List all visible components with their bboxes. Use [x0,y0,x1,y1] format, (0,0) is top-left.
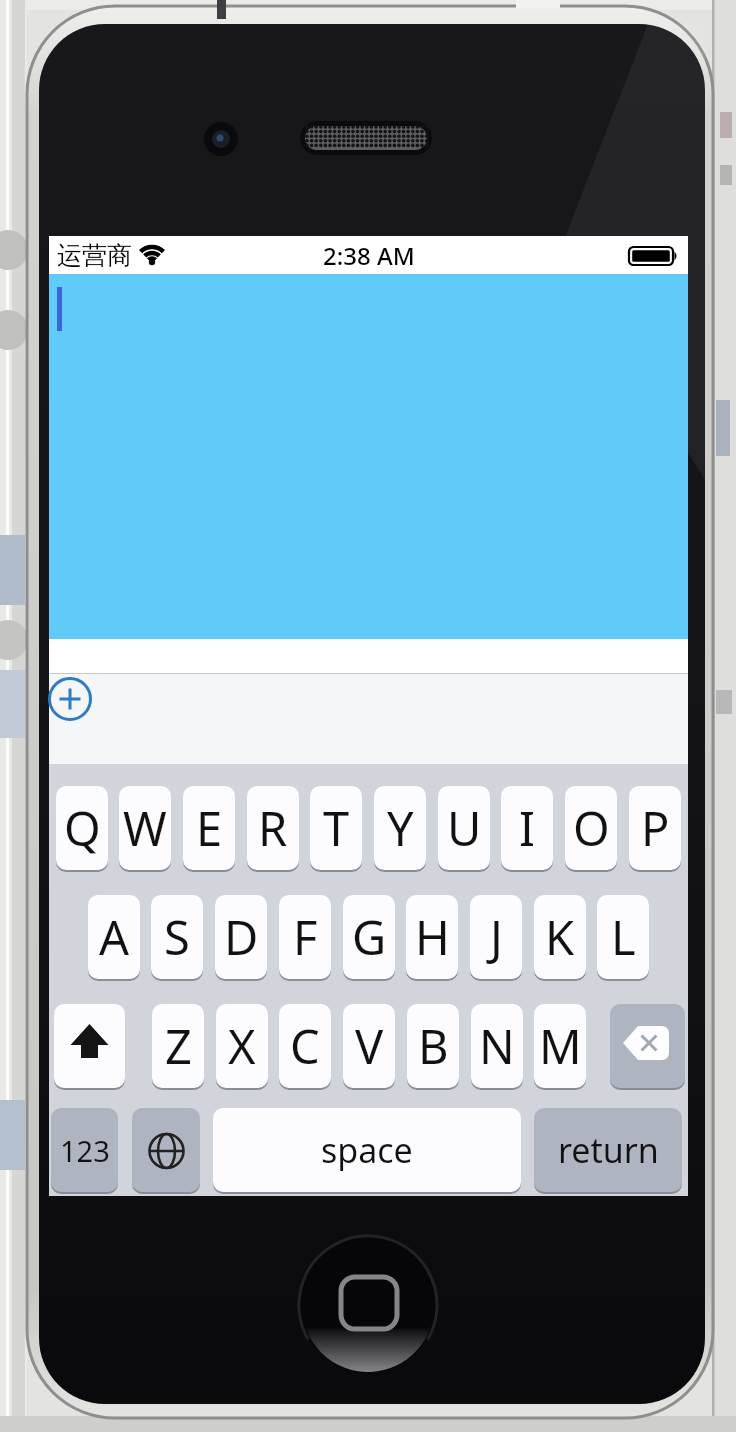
staticText: R [258,796,288,860]
button[interactable]: 123 [51,1108,118,1192]
staticText: S [164,905,190,969]
button[interactable]: E [183,786,235,870]
button[interactable]: J [470,895,522,979]
staticText: A [99,905,130,969]
button[interactable]: C [279,1004,331,1088]
button[interactable]: F [279,895,331,979]
staticText: return [558,1127,659,1173]
staticText: G [352,905,387,969]
staticText: L [611,905,636,969]
staticText: J [490,905,503,969]
staticText: W [123,796,167,860]
button[interactable]: A [88,895,140,979]
staticText: I [519,796,535,860]
staticText: Q [64,796,101,860]
button[interactable]: D [215,895,267,979]
staticText: 2:38 AM [323,239,415,272]
staticText: U [447,796,482,860]
button[interactable]: K [534,895,586,979]
button[interactable]: P [629,786,681,870]
button[interactable] [54,1004,125,1088]
button[interactable]: T [310,786,362,870]
button[interactable]: I [501,786,553,870]
staticText: Z [165,1014,192,1078]
button[interactable]: M [534,1004,586,1088]
button[interactable]: V [343,1004,395,1088]
staticText: 运营商 [57,240,132,271]
staticText: K [545,905,575,969]
staticText: Y [387,796,414,860]
button[interactable]: W [119,786,171,870]
staticText: C [290,1014,320,1078]
button[interactable]: S [151,895,203,979]
button[interactable]: return [534,1108,682,1192]
button[interactable]: Q [56,786,108,870]
button[interactable]: Y [374,786,426,870]
button[interactable] [132,1108,200,1192]
button[interactable]: U [438,786,490,870]
button[interactable]: B [407,1004,459,1088]
staticText: B [418,1014,449,1078]
staticText: 123 [60,1131,110,1170]
button[interactable]: Z [152,1004,204,1088]
button[interactable]: N [471,1004,523,1088]
staticText: F [293,905,318,969]
button[interactable]: X [216,1004,268,1088]
staticText: N [479,1014,515,1078]
staticText: P [641,796,670,860]
button[interactable]: R [247,786,299,870]
staticText: O [573,796,610,860]
staticText: D [224,905,259,969]
staticText: V [355,1014,384,1078]
staticText: space [321,1127,413,1173]
staticText: E [196,796,223,860]
button[interactable] [610,1004,685,1088]
button[interactable]: space [213,1108,521,1192]
staticText: X [228,1014,256,1078]
button[interactable] [49,677,93,721]
button[interactable]: H [406,895,458,979]
button[interactable]: G [343,895,395,979]
staticText: M [539,1014,582,1078]
button[interactable]: L [597,895,649,979]
button[interactable] [49,274,688,639]
staticText: H [415,905,450,969]
staticText: T [323,796,350,860]
button[interactable]: O [565,786,617,870]
